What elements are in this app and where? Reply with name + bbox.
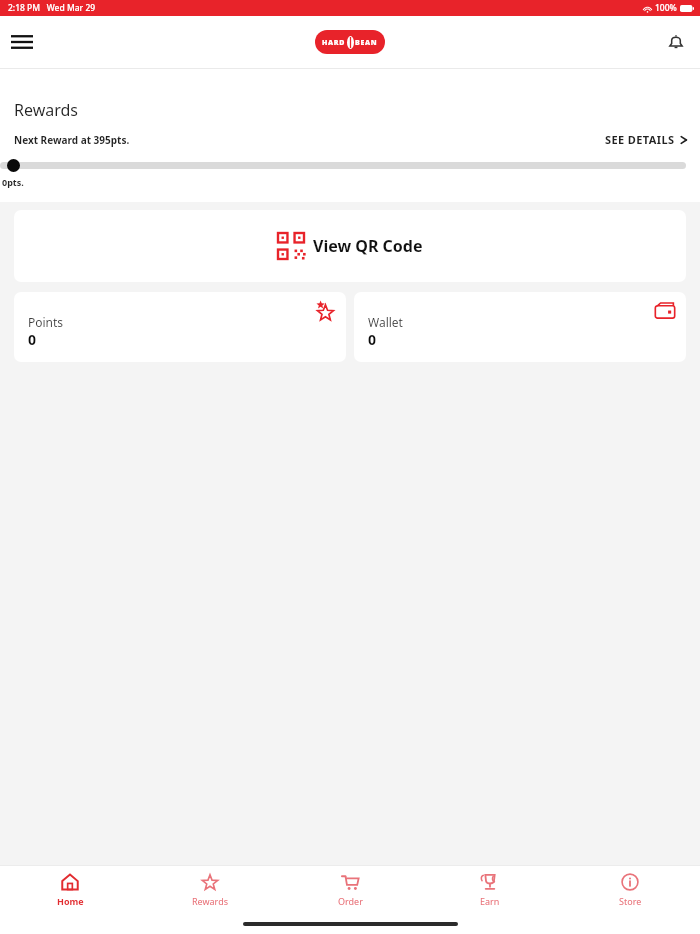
staticText: Order (338, 895, 363, 907)
staticText: 0pts. (2, 176, 24, 188)
staticText: 0 (368, 330, 377, 349)
button[interactable]: Earn (420, 866, 560, 914)
button[interactable]: Rewards (140, 866, 280, 914)
staticText: HARD (322, 38, 346, 48)
button[interactable]: View QR Code (14, 210, 686, 282)
staticText: Earn (480, 895, 500, 907)
button[interactable]: Notifications (658, 24, 694, 60)
button[interactable]: SEE DETAILS (601, 129, 692, 150)
staticText: BEAN (355, 38, 378, 48)
button[interactable]: Points (14, 292, 346, 362)
button[interactable]: Menu (4, 24, 40, 60)
staticText: Store (619, 895, 642, 907)
staticText: Rewards (192, 895, 229, 907)
staticText: 0 (28, 330, 37, 349)
button[interactable]: Store (560, 866, 700, 914)
button[interactable]: Home (0, 866, 140, 914)
staticText: View QR Code (313, 235, 423, 257)
staticText: Points (28, 314, 64, 330)
staticText: Home (57, 895, 84, 907)
staticText: 100% (655, 2, 677, 14)
staticText: Next Reward at 395pts. (14, 133, 130, 147)
button[interactable]: Order (280, 866, 420, 914)
staticText: 2:18 PM Wed Mar 29 (8, 2, 96, 14)
staticText: Wallet (368, 314, 403, 330)
staticText: Rewards (14, 99, 79, 121)
button[interactable]: Wallet (354, 292, 686, 362)
staticText: SEE DETAILS (605, 132, 675, 147)
button[interactable]: Hard Bean logo (315, 30, 385, 54)
